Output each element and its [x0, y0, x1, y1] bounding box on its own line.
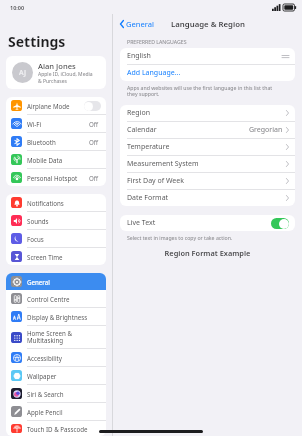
staticText: Apple ID, iCloud, Media & Purchases [38, 71, 93, 84]
staticText: Live Text [127, 218, 271, 228]
staticText: Off [89, 138, 99, 146]
staticText: Off [89, 174, 99, 182]
button[interactable]: Date Format [120, 190, 295, 206]
button[interactable]: Apple Pencil [6, 403, 106, 420]
staticText: Language & Region [171, 19, 245, 30]
button[interactable]: Temperature [120, 139, 295, 155]
staticText: Siri & Search [27, 390, 101, 398]
staticText: Screen Time [27, 253, 101, 261]
staticText: General [126, 19, 154, 29]
staticText: Region [127, 108, 286, 118]
button[interactable]: Personal Hotspot [6, 169, 106, 186]
staticText: Temperature [127, 142, 286, 152]
staticText: Display & Brightness [27, 313, 101, 321]
button[interactable]: Sounds [6, 212, 106, 229]
staticText: Settings [8, 32, 66, 51]
staticText: Airplane Mode [27, 102, 84, 110]
staticText: Accessibility [27, 354, 101, 362]
button[interactable]: Calendar [120, 122, 295, 138]
staticText: Wi-Fi [27, 120, 89, 128]
button[interactable]: Airplane Mode [6, 97, 106, 114]
staticText: Off [89, 120, 99, 128]
button[interactable]: Control Centre [6, 290, 106, 307]
staticText: Wallpaper [27, 372, 101, 380]
button[interactable]: Home Screen & Multitasking [6, 326, 106, 348]
button[interactable]: Wallpaper [6, 367, 106, 384]
staticText: Focus [27, 235, 101, 243]
staticText: Measurement System [127, 159, 286, 169]
staticText: 10:00 [10, 4, 25, 11]
button[interactable]: Wi-Fi [6, 115, 106, 132]
button[interactable]: AJ [6, 56, 106, 89]
staticText: Home Screen & Multitasking [27, 329, 101, 345]
staticText: Alan Jones [38, 61, 76, 71]
staticText: AJ [19, 68, 26, 78]
button[interactable]: Display & Brightness [6, 308, 106, 325]
staticText: Personal Hotspot [27, 174, 89, 182]
button[interactable]: Siri & Search [6, 385, 106, 402]
button[interactable]: Live Text toggle [271, 218, 289, 229]
staticText: Region Format Example [120, 248, 295, 258]
staticText: Notifications [27, 199, 101, 207]
staticText: Gregorian [249, 125, 283, 135]
staticText: First Day of Week [127, 176, 286, 186]
button[interactable]: Accessibility [6, 349, 106, 366]
staticText: Apps and websites will use the first lan… [127, 84, 273, 98]
button[interactable]: Airplane Mode toggle [84, 101, 101, 111]
staticText: PREFERRED LANGUAGES [127, 38, 187, 45]
button[interactable]: Touch ID & Passcode [6, 421, 106, 436]
staticText: Touch ID & Passcode [27, 425, 101, 433]
staticText: Apple Pencil [27, 408, 101, 416]
staticText: Add Language... [127, 68, 289, 78]
button[interactable]: Bluetooth [6, 133, 106, 150]
staticText: Mobile Data [27, 156, 101, 164]
button[interactable]: English [120, 48, 295, 64]
button[interactable]: Mobile Data [6, 151, 106, 168]
button[interactable]: Add Language... [120, 65, 295, 81]
staticText: Select text in images to copy or take ac… [127, 234, 233, 241]
staticText: Control Centre [27, 295, 101, 303]
button[interactable]: Notifications [6, 194, 106, 211]
button[interactable]: Screen Time [6, 248, 106, 265]
button[interactable]: Live Text [120, 215, 295, 231]
button[interactable]: General [6, 273, 106, 290]
staticText: Bluetooth [27, 138, 89, 146]
button[interactable]: Focus [6, 230, 106, 247]
staticText: Date Format [127, 193, 286, 203]
staticText: General [27, 278, 101, 286]
staticText: Calendar [127, 125, 249, 135]
staticText: Sounds [27, 217, 101, 225]
button[interactable]: Back to General [120, 19, 154, 29]
button[interactable]: Region [120, 105, 295, 121]
staticText: English [127, 51, 282, 61]
button[interactable]: First Day of Week [120, 173, 295, 189]
button[interactable]: Measurement System [120, 156, 295, 172]
